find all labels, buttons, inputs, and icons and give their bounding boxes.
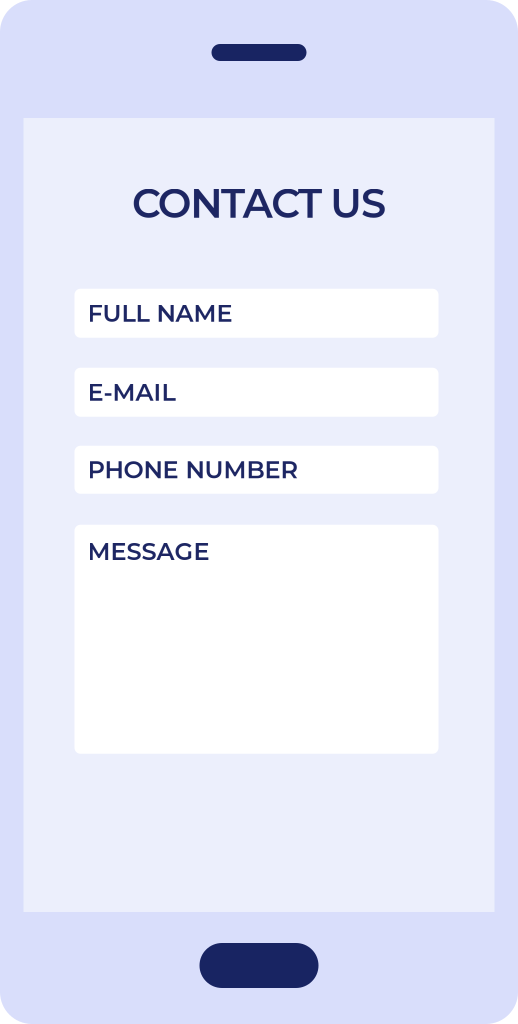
staticText: FULL NAME xyxy=(87,299,232,328)
button[interactable]: MESSAGE xyxy=(74,525,438,754)
staticText: PHONE NUMBER xyxy=(87,455,298,484)
button[interactable]: FULL NAME xyxy=(74,289,438,338)
staticText: CONTACT US xyxy=(132,179,386,228)
staticText: E-MAIL xyxy=(87,378,175,407)
button[interactable]: PHONE NUMBER xyxy=(74,446,438,494)
staticText: MESSAGE xyxy=(87,537,209,566)
button[interactable]: E-MAIL xyxy=(74,368,438,417)
